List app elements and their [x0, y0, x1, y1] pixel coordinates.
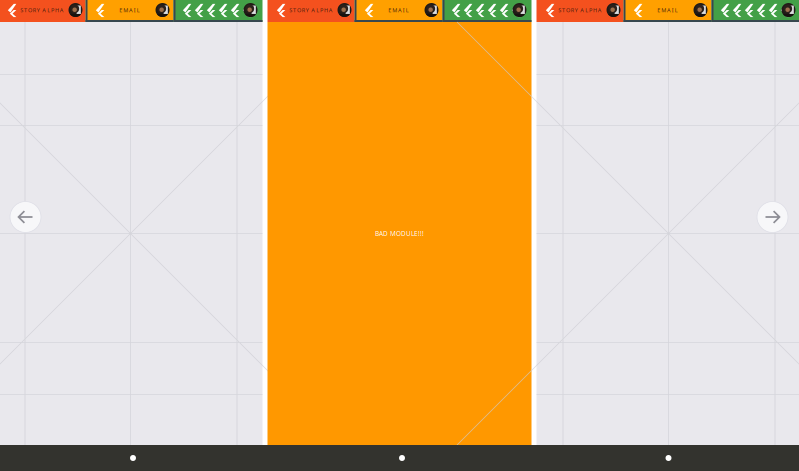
button[interactable]: Flutter samples	[173, 0, 262, 22]
staticText: EMAIL	[657, 6, 678, 14]
button[interactable]: STORY ALPHA	[267, 0, 354, 22]
button[interactable]: STORY ALPHA	[0, 0, 85, 22]
staticText: BAD MODULE!!!	[375, 229, 424, 238]
staticText: STORY ALPHA	[289, 6, 333, 14]
button[interactable]: EMAIL	[85, 0, 173, 22]
button[interactable]: EMAIL	[354, 0, 442, 22]
staticText: STORY ALPHA	[20, 6, 64, 14]
button[interactable]: Flutter samples	[442, 0, 531, 22]
button[interactable]: Home	[399, 445, 405, 471]
button[interactable]: Next page	[757, 201, 788, 232]
staticText: STORY ALPHA	[558, 6, 602, 14]
button[interactable]: Home	[665, 445, 671, 471]
button[interactable]: STORY ALPHA	[536, 0, 623, 22]
staticText: EMAIL	[119, 6, 140, 14]
button[interactable]: Flutter samples	[711, 0, 799, 22]
staticText: EMAIL	[388, 6, 409, 14]
button[interactable]: EMAIL	[623, 0, 711, 22]
button[interactable]: Home	[130, 445, 136, 471]
button[interactable]: Previous page	[10, 201, 41, 232]
